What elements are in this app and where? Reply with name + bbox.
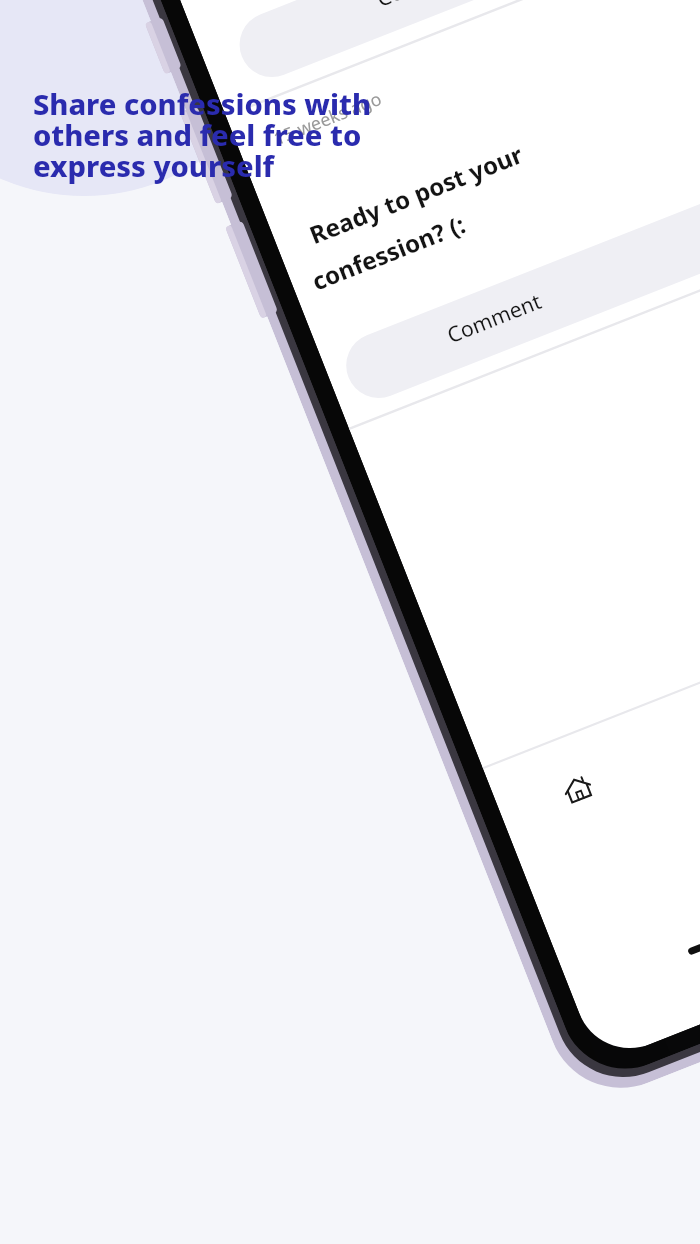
other: Share confessions promo — [0, 0, 700, 1244]
button[interactable] — [0, 0, 700, 1244]
